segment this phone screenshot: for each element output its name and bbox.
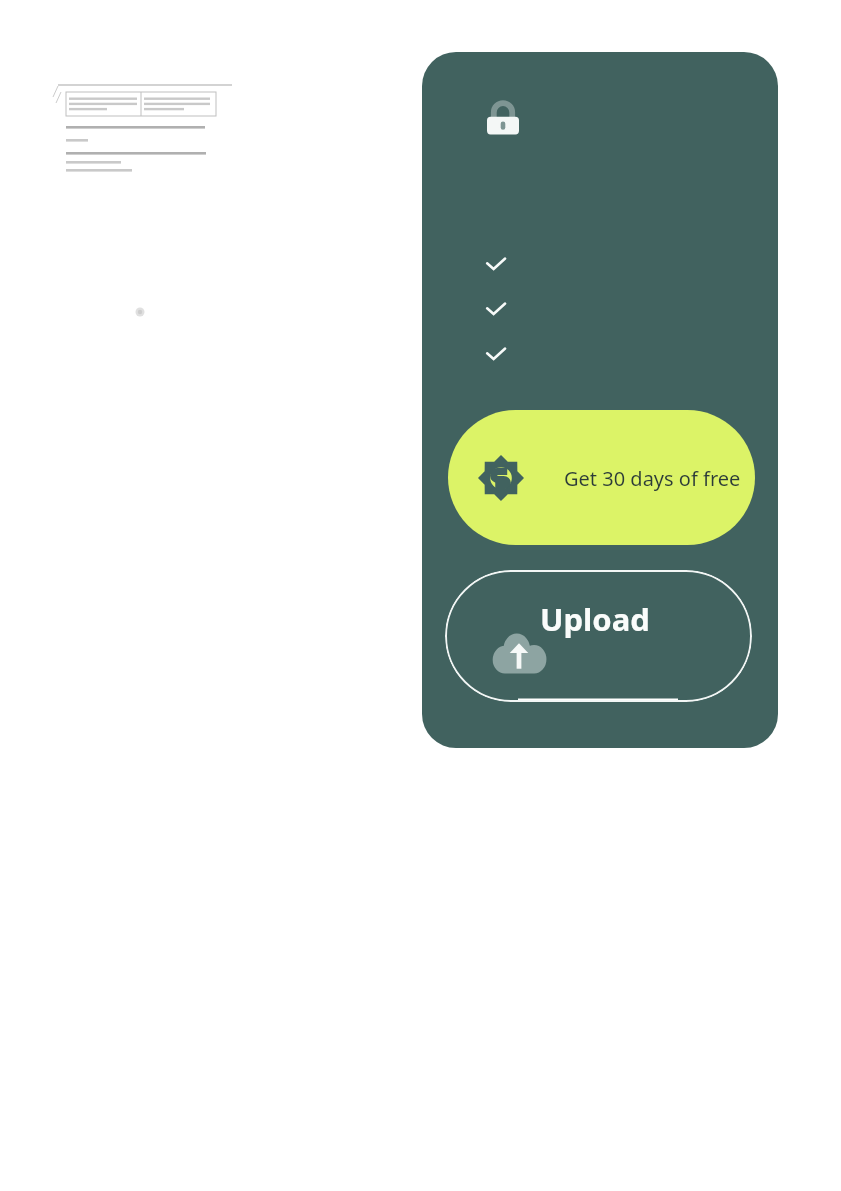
button[interactable]: Get 30 days of free: [448, 410, 755, 545]
button[interactable]: Upload: [445, 570, 752, 702]
staticText: Get 30 days of free: [564, 465, 741, 492]
other: Secure: [483, 100, 523, 140]
staticText: Upload: [540, 598, 650, 640]
